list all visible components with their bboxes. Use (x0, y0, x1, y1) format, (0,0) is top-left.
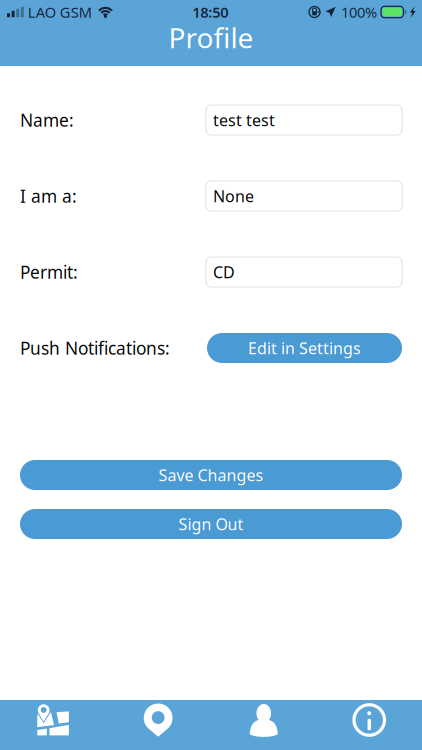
staticText: I am a: (20, 184, 77, 207)
button[interactable]: Info (316, 700, 422, 750)
staticText: LAO GSM (28, 2, 92, 22)
staticText: Push Notifications: (20, 336, 170, 359)
button[interactable]: Edit in Settings (207, 333, 402, 363)
button[interactable]: Profile (211, 700, 316, 750)
staticText: Save Changes (158, 464, 263, 486)
staticText: Edit in Settings (248, 337, 361, 359)
button[interactable]: Save Changes (20, 460, 402, 490)
staticText: Name: (20, 108, 74, 131)
staticText: Profile (168, 19, 253, 56)
staticText: 100% (341, 2, 377, 22)
button[interactable]: Sign Out (20, 509, 402, 539)
staticText: test test (213, 109, 275, 131)
staticText: 18:50 (192, 2, 228, 22)
button[interactable]: Places (105, 700, 211, 750)
staticText: None (213, 185, 254, 207)
staticText: Permit: (20, 260, 78, 283)
staticText: CD (213, 261, 235, 283)
staticText: Sign Out (178, 513, 243, 535)
button[interactable]: Map (0, 700, 105, 750)
